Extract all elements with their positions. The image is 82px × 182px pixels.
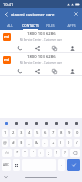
button[interactable]: +: [50, 139, 56, 147]
button[interactable]: 9: [66, 129, 72, 137]
staticText: ": [24, 150, 26, 156]
button[interactable]: !: [54, 149, 60, 157]
staticText: *: [16, 150, 19, 156]
button[interactable]: Copy: [50, 67, 58, 75]
staticText: _: [28, 140, 30, 146]
button[interactable]: Keyboard tool 2: [11, 118, 21, 128]
button[interactable]: Share: [33, 44, 41, 52]
staticText: 0: [76, 130, 79, 136]
button[interactable]: /: [74, 139, 80, 147]
staticText: 1: [4, 130, 7, 136]
staticText: ': [33, 150, 34, 156]
staticText: :: [40, 150, 42, 156]
button[interactable]: Backspace: [70, 149, 80, 157]
button[interactable]: Add to contacts: [68, 67, 76, 75]
button[interactable]: ): [66, 139, 72, 147]
button[interactable]: Hide keyboard: [3, 174, 9, 180]
button[interactable]: Keyboard tool 5: [41, 118, 51, 128]
button[interactable]: #: [10, 139, 16, 147]
button[interactable]: 6: [42, 129, 48, 137]
staticText: ): [68, 140, 70, 146]
staticText: 10:41: [3, 2, 14, 7]
staticText: CONTACTS: [22, 23, 39, 28]
button[interactable]: APPS: [61, 20, 82, 30]
staticText: -: [44, 140, 46, 146]
staticText: FILES: [46, 23, 55, 28]
staticText: xiaomi customer care: [11, 11, 55, 17]
button[interactable]: Clear search: [71, 9, 81, 19]
button[interactable]: Keyboard tool 4: [31, 118, 41, 128]
button[interactable]: *: [14, 149, 20, 157]
staticText: 3: [20, 130, 23, 136]
staticText: 5: [36, 130, 39, 136]
staticText: Mi Service Center - Customer care: [20, 61, 62, 65]
button[interactable]: Share: [33, 67, 41, 75]
button[interactable]: 7: [50, 129, 56, 137]
staticText: $: [20, 140, 23, 146]
button[interactable]: _: [26, 139, 32, 147]
button[interactable]: .: [58, 159, 65, 171]
staticText: mi: [4, 57, 10, 63]
button[interactable]: 4: [26, 129, 32, 137]
button[interactable]: mi: [0, 53, 82, 76]
staticText: 1800 103 6286: [27, 54, 56, 60]
staticText: 9: [68, 130, 71, 136]
staticText: 6: [44, 130, 47, 136]
staticText: &: [35, 140, 39, 146]
staticText: 8: [60, 130, 63, 136]
button[interactable]: ;: [46, 149, 52, 157]
staticText: ;: [48, 150, 50, 156]
button[interactable]: Back: [1, 9, 11, 19]
staticText: 4: [28, 130, 31, 136]
staticText: APPS: [67, 23, 76, 28]
button[interactable]: ': [30, 149, 36, 157]
button[interactable]: Call: [15, 67, 23, 75]
button[interactable]: -: [42, 139, 48, 147]
staticText: @: [3, 140, 7, 146]
staticText: ABC: [3, 163, 10, 167]
button[interactable]: Emoji: [13, 159, 20, 171]
staticText: ALL: [7, 23, 13, 28]
button[interactable]: 5: [34, 129, 40, 137]
button[interactable]: ": [22, 149, 28, 157]
staticText: (: [60, 140, 62, 146]
button[interactable]: ?: [62, 149, 68, 157]
button[interactable]: 8: [58, 129, 64, 137]
staticText: .: [61, 162, 63, 168]
button[interactable]: 1: [2, 129, 8, 137]
staticText: =\<: [5, 151, 9, 155]
button[interactable]: 0: [74, 129, 80, 137]
button[interactable]: ABC: [2, 159, 11, 171]
staticText: +: [52, 140, 55, 146]
button[interactable]: Copy: [50, 44, 58, 52]
button[interactable]: Keyboard tool 8: [71, 118, 81, 128]
button[interactable]: =\<: [2, 149, 12, 157]
button[interactable]: Keyboard tool 6: [51, 118, 61, 128]
button[interactable]: Call: [15, 44, 23, 52]
button[interactable]: &: [34, 139, 40, 147]
button[interactable]: 2: [10, 129, 16, 137]
staticText: /: [76, 140, 78, 146]
button[interactable]: Keyboard tool 1: [1, 118, 11, 128]
button[interactable]: mi: [0, 30, 82, 53]
button[interactable]: :: [38, 149, 44, 157]
staticText: 7: [52, 130, 55, 136]
staticText: Mi Service Center - Customer care: [20, 38, 62, 42]
staticText: mi: [4, 34, 10, 40]
button[interactable]: 3: [18, 129, 24, 137]
button[interactable]: Add to contacts: [68, 44, 76, 52]
button[interactable]: $: [18, 139, 24, 147]
staticText: 2: [12, 130, 15, 136]
button[interactable]: Keyboard tool 3: [21, 118, 31, 128]
staticText: #: [12, 140, 15, 146]
staticText: 1800 103 6286: [27, 31, 56, 37]
button[interactable]: Keyboard tool 7: [61, 118, 71, 128]
button[interactable]: CONTACTS: [20, 20, 40, 30]
button[interactable]: FILES: [40, 20, 61, 30]
staticText: !: [56, 150, 58, 156]
button[interactable]: Enter: [67, 159, 80, 171]
button[interactable]: (: [58, 139, 64, 147]
button[interactable]: ALL: [0, 20, 20, 30]
button[interactable]: @: [2, 139, 8, 147]
